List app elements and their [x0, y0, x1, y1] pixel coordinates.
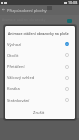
- button[interactable]: Stránkování: [5, 95, 75, 106]
- staticText: Stránkování: [7, 98, 30, 103]
- staticText: Přizpůsobení plochy: [7, 8, 47, 14]
- button[interactable]: Zrušit: [28, 108, 50, 117]
- staticText: 10:08: [68, 0, 78, 5]
- staticText: Zrušit: [33, 110, 45, 116]
- staticText: Animace otáčení obrazovky na ploše: [8, 31, 69, 36]
- staticText: Otočit: [7, 53, 19, 58]
- button[interactable]: Otočit: [5, 50, 75, 61]
- button[interactable]: Přetáčení: [5, 61, 75, 72]
- button[interactable]: Výchozí: [5, 39, 75, 50]
- button[interactable]: Option: [63, 51, 71, 59]
- button[interactable]: Válcový vzhled: [5, 72, 75, 83]
- staticText: Výchozí: [7, 42, 22, 47]
- button[interactable]: Option: [63, 74, 71, 82]
- button[interactable]: Selected option: [63, 40, 71, 48]
- button[interactable]: Kostka: [5, 83, 75, 94]
- staticText: Přetáčení: [7, 64, 25, 69]
- staticText: Válcový vzhled: [7, 75, 35, 80]
- button[interactable]: Option: [63, 63, 71, 71]
- button[interactable]: Option: [63, 85, 71, 93]
- staticText: Kostka: [7, 86, 20, 91]
- button[interactable]: Option: [63, 96, 71, 104]
- button[interactable]: Back: [1, 7, 6, 12]
